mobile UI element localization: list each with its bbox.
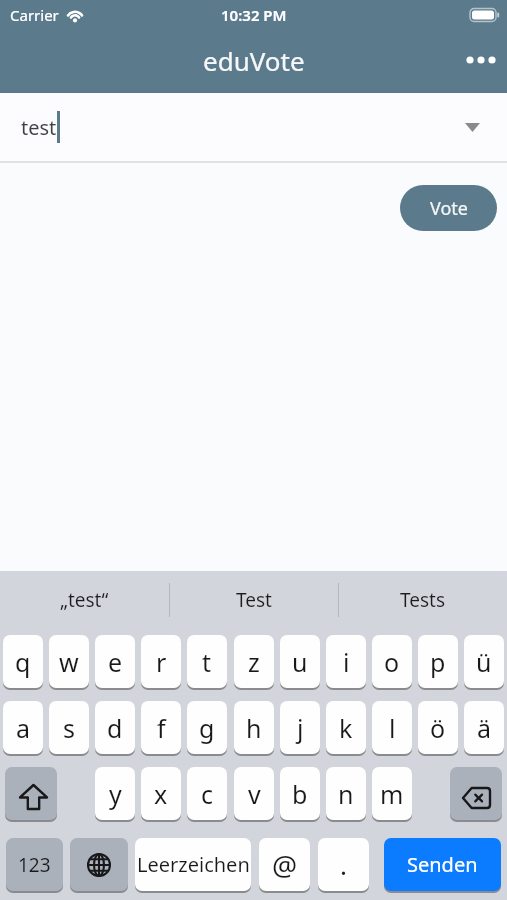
button[interactable]: g (187, 701, 227, 754)
button[interactable]: o (372, 635, 412, 688)
button[interactable]: „test“ (0, 571, 169, 629)
staticText: „test“ (60, 587, 109, 613)
staticText: c (201, 777, 214, 811)
staticText: i (343, 645, 350, 679)
staticText: eduVote (203, 43, 305, 78)
button[interactable]: d (95, 701, 135, 754)
staticText: ä (477, 711, 492, 745)
button[interactable]: m (372, 767, 412, 820)
staticText: q (15, 645, 31, 679)
button[interactable]: ö (418, 701, 458, 754)
staticText: . (340, 847, 347, 882)
staticText: 10:32 PM (221, 5, 287, 25)
button[interactable]: Senden (384, 838, 501, 891)
button[interactable]: i (326, 635, 366, 688)
staticText: Carrier (10, 5, 59, 25)
staticText: Vote (430, 196, 468, 221)
staticText: s (63, 711, 75, 745)
staticText: Test (236, 587, 272, 613)
button[interactable]: q (3, 635, 43, 688)
staticText: ö (430, 711, 446, 745)
staticText: w (59, 645, 79, 679)
staticText: x (154, 777, 168, 811)
staticText: f (157, 711, 166, 745)
staticText: Leerzeichen (137, 851, 250, 878)
button[interactable]: b (280, 767, 320, 820)
button[interactable] (5, 767, 57, 820)
staticText: z (248, 645, 260, 679)
button[interactable]: ä (464, 701, 504, 754)
staticText: t (202, 645, 212, 679)
staticText: ü (476, 645, 492, 679)
staticText: j (297, 711, 304, 745)
staticText: Tests (400, 587, 446, 613)
button[interactable]: Tests (339, 571, 507, 629)
button[interactable]: h (234, 701, 274, 754)
staticText: g (199, 711, 215, 745)
staticText: r (156, 645, 167, 679)
staticText: p (430, 645, 446, 679)
button[interactable]: s (49, 701, 89, 754)
button[interactable]: w (49, 635, 89, 688)
button[interactable]: k (326, 701, 366, 754)
staticText: h (246, 711, 262, 745)
button[interactable] (461, 40, 501, 80)
staticText: k (339, 711, 353, 745)
staticText: y (109, 777, 122, 811)
button[interactable]: . (318, 838, 369, 891)
staticText: Senden (407, 851, 478, 878)
button[interactable]: y (95, 767, 135, 820)
staticText: l (389, 711, 396, 745)
button[interactable]: u (280, 635, 320, 688)
staticText: a (16, 711, 31, 745)
button[interactable]: t (187, 635, 227, 688)
button[interactable]: j (280, 701, 320, 754)
button[interactable]: a (3, 701, 43, 754)
staticText: d (107, 711, 123, 745)
button[interactable]: @ (259, 838, 310, 891)
button[interactable]: n (326, 767, 366, 820)
button[interactable] (70, 838, 128, 891)
staticText: b (292, 777, 308, 811)
button[interactable]: r (141, 635, 181, 688)
staticText: 123 (18, 852, 51, 878)
button[interactable]: e (95, 635, 135, 688)
button[interactable]: x (141, 767, 181, 820)
staticText: u (292, 645, 308, 679)
button[interactable]: ü (464, 635, 504, 688)
button[interactable]: test (0, 93, 507, 161)
button[interactable]: z (234, 635, 274, 688)
button[interactable]: f (141, 701, 181, 754)
staticText: n (338, 777, 354, 811)
button[interactable]: 123 (6, 838, 63, 891)
button[interactable]: Leerzeichen (135, 838, 251, 891)
button[interactable]: l (372, 701, 412, 754)
button[interactable] (450, 767, 502, 820)
button[interactable]: v (234, 767, 274, 820)
button[interactable]: p (418, 635, 458, 688)
staticText: v (248, 777, 261, 811)
button[interactable]: Vote (400, 185, 497, 231)
staticText: @ (272, 846, 298, 884)
staticText: o (384, 645, 400, 679)
button[interactable]: c (187, 767, 227, 820)
staticText: e (108, 645, 123, 679)
staticText: m (380, 777, 404, 811)
button[interactable]: Test (170, 571, 338, 629)
staticText: test (21, 114, 57, 141)
